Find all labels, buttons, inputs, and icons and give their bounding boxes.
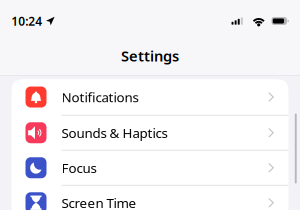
staticText: Notifications <box>61 88 138 106</box>
button[interactable]: Notifications <box>11 79 288 116</box>
staticText: Settings <box>121 46 179 65</box>
staticText: 10:24 <box>11 13 42 29</box>
button[interactable]: Sounds & Haptics <box>11 116 288 151</box>
staticText: Sounds & Haptics <box>61 124 167 142</box>
button[interactable]: Screen Time <box>11 186 288 210</box>
staticText: Focus <box>61 159 96 177</box>
button[interactable]: Focus <box>11 151 288 186</box>
staticText: Screen Time <box>61 194 136 210</box>
